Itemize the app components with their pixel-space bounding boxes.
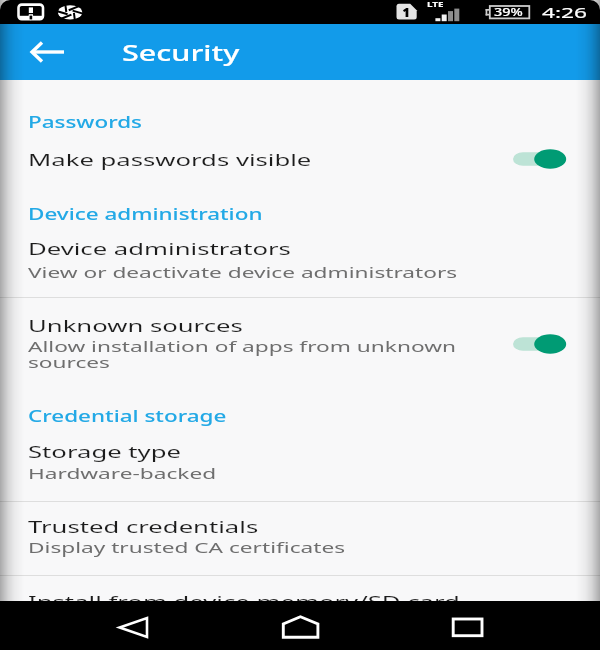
- button[interactable]: [0, 431, 600, 491]
- staticText: 4:26: [542, 3, 588, 23]
- button[interactable]: [0, 299, 600, 385]
- staticText: LTE: [427, 0, 444, 9]
- staticText: Passwords: [28, 110, 142, 132]
- staticText: Display trusted CA certificates: [28, 537, 345, 557]
- staticText: Device administration: [28, 202, 263, 224]
- staticText: Make passwords visible: [28, 148, 312, 171]
- button[interactable]: [0, 576, 600, 601]
- staticText: Storage type: [28, 440, 182, 463]
- staticText: 39%: [494, 5, 524, 19]
- button[interactable]: Toggle: [507, 139, 573, 179]
- staticText: Device administrators: [28, 237, 292, 260]
- button[interactable]: Home: [272, 601, 324, 650]
- staticText: Credential storage: [28, 404, 227, 426]
- button[interactable]: [0, 232, 600, 294]
- staticText: Unknown sources: [28, 314, 244, 337]
- button[interactable]: Toggle: [507, 324, 573, 364]
- staticText: sources: [28, 352, 111, 372]
- staticText: View or deactivate device administrators: [28, 262, 458, 282]
- button[interactable]: [0, 504, 600, 568]
- button[interactable]: [0, 138, 600, 182]
- staticText: Trusted credentials: [28, 515, 259, 538]
- staticText: Hardware-backed: [28, 463, 217, 483]
- staticText: Allow installation of apps from unknown: [28, 336, 457, 356]
- button[interactable]: Back: [22, 36, 74, 68]
- staticText: Security: [122, 38, 240, 67]
- button[interactable]: Recents: [440, 601, 492, 650]
- staticText: Install from device memory/SD card: [28, 590, 460, 613]
- button[interactable]: Back: [108, 601, 160, 650]
